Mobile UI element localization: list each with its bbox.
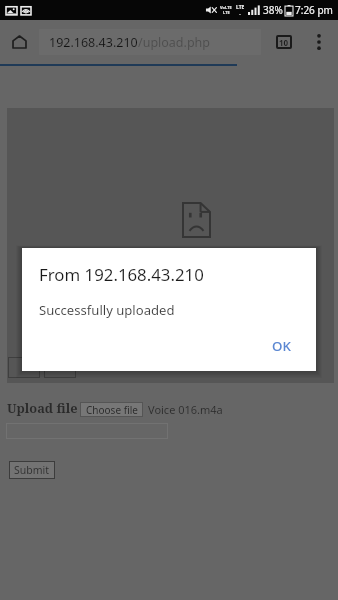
button[interactable]: Choose file [80, 402, 143, 417]
staticText: Voice 016.m4a [148, 402, 223, 417]
staticText: Upload file [7, 399, 78, 416]
staticText: /upload.php [138, 34, 211, 51]
staticText: 10 [279, 37, 289, 48]
staticText: 192.168.43.210 [49, 34, 138, 51]
staticText: LTE [236, 4, 245, 11]
staticText: Successfully uploaded [39, 301, 175, 319]
staticText: OK [272, 337, 291, 355]
staticText: Choose file [86, 403, 138, 417]
staticText: .. [239, 11, 242, 16]
staticText: From 192.168.43.210 [39, 263, 204, 286]
button[interactable]: Home [0, 20, 39, 64]
staticText: Submit [14, 463, 50, 477]
staticText: VoLTE [220, 5, 232, 10]
button[interactable]: Tabs [269, 27, 299, 57]
button[interactable]: 192.168.43.210 [39, 29, 261, 55]
staticText: 38% [263, 3, 283, 17]
button[interactable]: OK [262, 331, 301, 361]
staticText: LTE [223, 10, 230, 15]
button[interactable]: More options [304, 27, 334, 57]
button[interactable]: Submit [9, 461, 55, 479]
staticText: 7:26 pm [295, 3, 333, 17]
